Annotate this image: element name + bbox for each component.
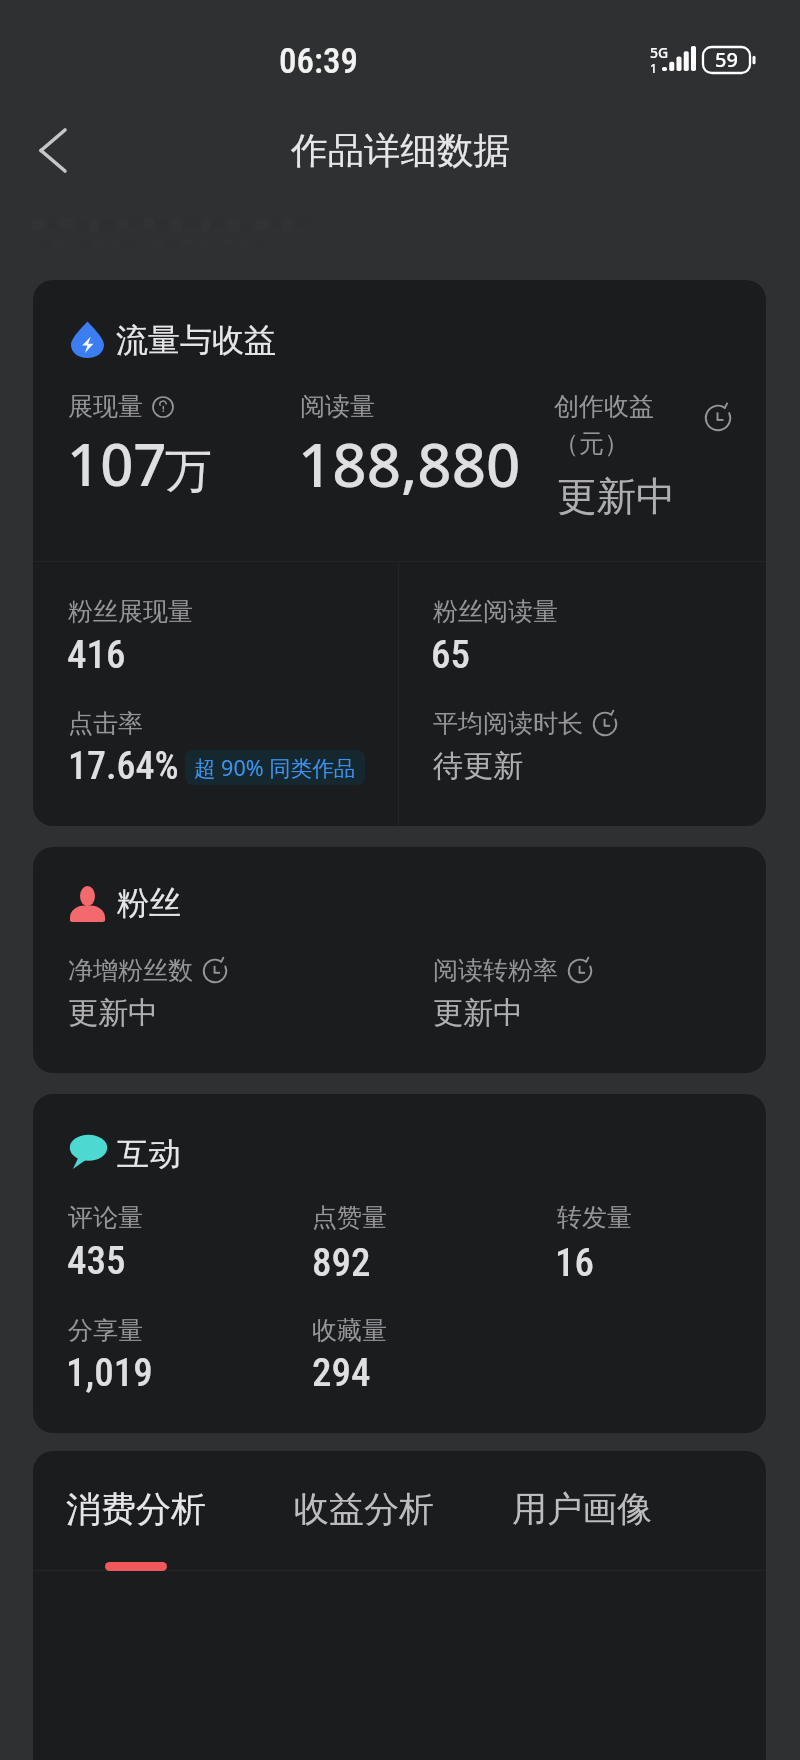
- staticText: 892: [312, 1240, 371, 1286]
- staticText: 1: [650, 60, 657, 76]
- button[interactable]: 消费分析: [50, 1468, 222, 1578]
- button[interactable]: 点击率: [55, 698, 385, 798]
- staticText: 17.64%: [68, 744, 179, 789]
- staticText: 流量与收益: [116, 320, 276, 360]
- staticText: 用户画像: [512, 1487, 652, 1531]
- staticText: 59: [715, 46, 738, 73]
- staticText: 展现量: [68, 391, 143, 422]
- staticText: 阅读转粉率: [433, 955, 558, 986]
- staticText: 435: [67, 1238, 126, 1284]
- staticText: 更新中: [433, 994, 523, 1032]
- staticText: 16: [555, 1240, 594, 1286]
- button[interactable]: 收藏量: [300, 1308, 525, 1398]
- staticText: 创作收益 （元）: [554, 391, 654, 459]
- staticText: 65: [431, 632, 470, 678]
- staticText: 收藏量: [312, 1315, 387, 1346]
- button[interactable]: 阅读转粉率: [420, 945, 750, 1040]
- button[interactable]: 创作收益 （元）: [542, 380, 754, 515]
- staticText: 1,019: [66, 1350, 153, 1396]
- staticText: 更新中: [557, 472, 676, 522]
- button[interactable]: 平均阅读时长: [420, 698, 750, 798]
- staticText: 分享量: [68, 1315, 143, 1346]
- staticText: 互动: [117, 1134, 181, 1174]
- staticText: 万: [165, 442, 212, 501]
- button[interactable]: 转发量: [545, 1195, 755, 1285]
- button[interactable]: 阅读量: [290, 380, 530, 505]
- staticText: 粉丝阅读量: [433, 596, 558, 627]
- staticText: 净增粉丝数: [68, 955, 193, 986]
- button[interactable]: 评论量: [55, 1195, 280, 1285]
- staticText: 消费分析: [66, 1487, 206, 1531]
- staticText: 416: [67, 632, 126, 678]
- staticText: 转发量: [557, 1202, 632, 1233]
- staticText: 107: [67, 424, 167, 503]
- staticText: 更新中: [68, 994, 158, 1032]
- staticText: 点赞量: [312, 1202, 387, 1233]
- button[interactable]: 粉丝展现量: [55, 585, 385, 680]
- staticText: 294: [312, 1350, 371, 1396]
- staticText: 5G: [650, 43, 669, 62]
- staticText: 待更新: [433, 747, 523, 785]
- button[interactable]: 收益分析: [278, 1468, 450, 1578]
- staticText: 188,880: [298, 423, 521, 505]
- button[interactable]: 展现量: [55, 380, 285, 505]
- staticText: 收益分析: [294, 1487, 434, 1531]
- button[interactable]: 粉丝阅读量: [420, 585, 750, 680]
- button[interactable]: 用户画像: [496, 1468, 668, 1578]
- staticText: 平均阅读时长: [433, 708, 583, 739]
- staticText: 粉丝展现量: [68, 596, 193, 627]
- button[interactable]: Back: [17, 114, 89, 186]
- button[interactable]: 点赞量: [300, 1195, 525, 1285]
- staticText: 超 90% 同类作品: [194, 753, 356, 782]
- button[interactable]: 分享量: [55, 1308, 280, 1398]
- staticText: 阅读量: [300, 391, 375, 422]
- staticText: 粉丝: [117, 883, 181, 923]
- staticText: 点击率: [68, 708, 143, 739]
- staticText: 评论量: [68, 1202, 143, 1233]
- staticText: 作品详细数据: [291, 128, 510, 174]
- staticText: 06:39: [279, 41, 358, 82]
- button[interactable]: 净增粉丝数: [55, 945, 385, 1040]
